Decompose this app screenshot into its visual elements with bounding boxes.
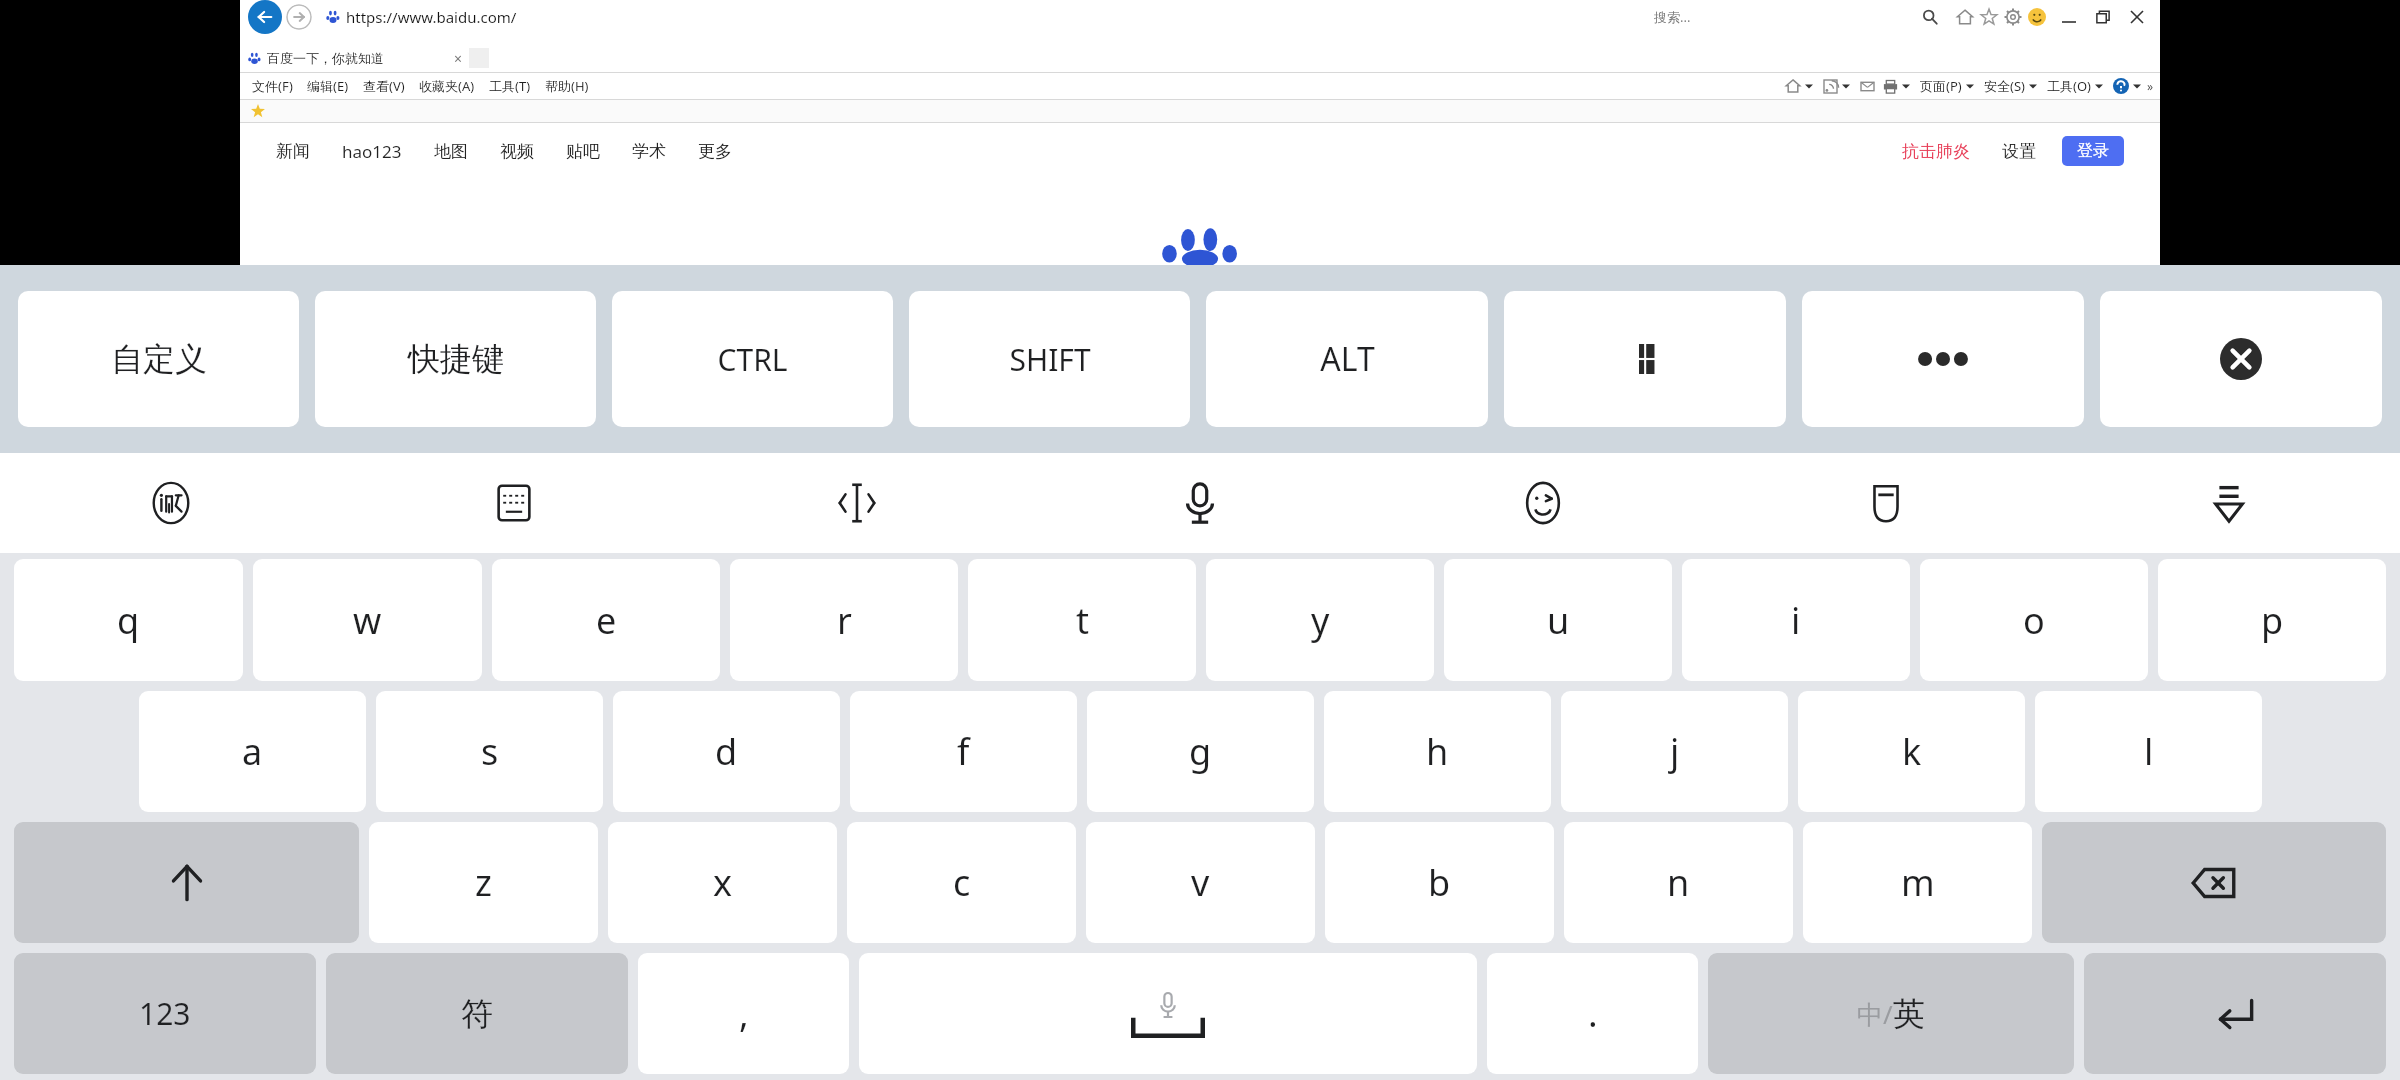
button[interactable]: u <box>1444 559 1672 681</box>
staticText: t <box>1076 596 1089 645</box>
button[interactable]: g <box>1087 691 1314 812</box>
button[interactable]: CTRL <box>612 291 893 427</box>
staticText: https://www.baidu.com/ <box>346 7 517 27</box>
button[interactable]: . <box>1487 953 1698 1074</box>
button[interactable]: Minimize <box>2060 8 2078 26</box>
button[interactable]: Emoji <box>1371 453 1714 553</box>
button[interactable]: a <box>139 691 366 812</box>
button[interactable]: 搜索... <box>1648 4 1948 30</box>
button[interactable]: Keyboard layout <box>342 453 685 553</box>
button[interactable]: Windows key <box>1504 291 1786 427</box>
button[interactable]: https://www.baidu.com/ <box>320 4 1648 30</box>
button[interactable]: 页面(P) <box>1920 77 1962 95</box>
button[interactable]: , <box>638 953 849 1074</box>
button[interactable]: k <box>1798 691 2025 812</box>
button[interactable]: 自定义 <box>18 291 299 427</box>
staticText: b <box>1428 858 1451 907</box>
button[interactable]: 编辑(E) <box>307 77 349 95</box>
button[interactable]: 登录 <box>2062 136 2124 166</box>
button[interactable]: Shift <box>14 822 359 943</box>
staticText: SHIFT <box>1009 339 1091 380</box>
button[interactable]: SHIFT <box>909 291 1190 427</box>
staticText: z <box>475 858 492 907</box>
staticText: 快捷键 <box>408 339 504 379</box>
button[interactable]: Favorites <box>1980 8 1998 26</box>
button[interactable]: 设置 <box>2002 141 2036 162</box>
button[interactable]: f <box>850 691 1077 812</box>
button[interactable]: Restore <box>2094 8 2112 26</box>
button[interactable]: 工具(O) <box>2047 77 2091 95</box>
button[interactable]: j <box>1561 691 1788 812</box>
button[interactable]: v <box>1086 822 1315 943</box>
button[interactable]: 符 <box>326 953 628 1074</box>
button[interactable]: 更多 <box>698 141 732 162</box>
button[interactable]: 文件(F) <box>252 77 293 95</box>
button[interactable]: b <box>1325 822 1554 943</box>
button[interactable]: Home <box>1956 8 1974 26</box>
button[interactable]: s <box>376 691 603 812</box>
staticText: v <box>1191 858 1210 907</box>
button[interactable]: z <box>369 822 598 943</box>
button[interactable]: 新闻 <box>276 141 310 162</box>
button[interactable]: Settings <box>2004 8 2022 26</box>
button[interactable]: Collapse keyboard <box>2057 453 2400 553</box>
button[interactable]: 帮助(H) <box>545 77 589 95</box>
button[interactable]: Handwriting <box>1714 453 2057 553</box>
button[interactable]: q <box>14 559 243 681</box>
button[interactable]: 学术 <box>632 141 666 162</box>
button[interactable]: x <box>608 822 837 943</box>
button[interactable]: More <box>1802 291 2084 427</box>
button[interactable]: 工具(T) <box>489 77 531 95</box>
staticText: 登录 <box>2077 141 2109 161</box>
button[interactable]: h <box>1324 691 1551 812</box>
button[interactable]: 中/ <box>1708 953 2074 1074</box>
button[interactable]: ALT <box>1206 291 1488 427</box>
staticText: 百度一下，你就知道 <box>267 50 384 66</box>
button[interactable]: l <box>2035 691 2262 812</box>
button[interactable]: hao123 <box>342 140 402 163</box>
staticText: , <box>739 989 749 1038</box>
staticText: h <box>1426 727 1449 776</box>
button[interactable]: 地图 <box>434 141 468 162</box>
staticText: e <box>596 596 617 645</box>
button[interactable]: o <box>1920 559 2148 681</box>
staticText: u <box>1547 596 1570 645</box>
button[interactable]: Back <box>248 0 282 34</box>
button[interactable]: d <box>613 691 840 812</box>
button[interactable]: e <box>492 559 720 681</box>
button[interactable]: 收藏夹(A) <box>419 77 475 95</box>
button[interactable]: Close <box>2128 8 2146 26</box>
button[interactable]: Space <box>859 953 1477 1074</box>
staticText: w <box>353 596 382 645</box>
staticText: k <box>1902 727 1922 776</box>
button[interactable]: y <box>1206 559 1434 681</box>
button[interactable]: 123 <box>14 953 316 1074</box>
button[interactable]: c <box>847 822 1076 943</box>
button[interactable]: 贴吧 <box>566 141 600 162</box>
button[interactable]: 查看(V) <box>363 77 405 95</box>
staticText: » <box>2147 78 2154 94</box>
button[interactable]: Close keyboard <box>2100 291 2382 427</box>
button[interactable]: 快捷键 <box>315 291 596 427</box>
button[interactable]: Forward <box>286 4 312 30</box>
button[interactable]: Voice input <box>1028 453 1371 553</box>
staticText: r <box>837 596 852 645</box>
button[interactable]: p <box>2158 559 2386 681</box>
staticText: s <box>481 727 499 776</box>
button[interactable]: m <box>1803 822 2032 943</box>
button[interactable]: t <box>968 559 1196 681</box>
button[interactable]: n <box>1564 822 1793 943</box>
button[interactable]: 百度一下，你就知道 <box>248 44 463 72</box>
button[interactable]: Input method <box>0 453 342 553</box>
button[interactable]: w <box>253 559 482 681</box>
button[interactable]: 抗击肺炎 <box>1902 141 1970 162</box>
button[interactable]: r <box>730 559 958 681</box>
button[interactable]: 视频 <box>500 141 534 162</box>
button[interactable]: Enter <box>2084 953 2386 1074</box>
staticText: l <box>2144 727 2154 776</box>
button[interactable]: 安全(S) <box>1984 77 2025 95</box>
button[interactable]: Move cursor <box>685 453 1028 553</box>
button[interactable]: i <box>1682 559 1910 681</box>
button[interactable]: Backspace <box>2042 822 2386 943</box>
